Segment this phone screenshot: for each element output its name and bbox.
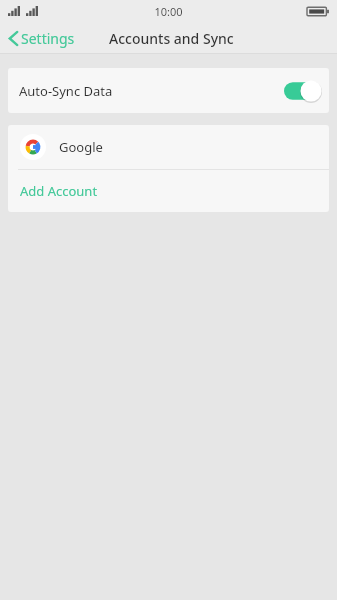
staticText: Google: [59, 138, 103, 156]
staticText: Auto-Sync Data: [19, 82, 113, 100]
button[interactable]: Add Account: [8, 170, 329, 212]
staticText: Settings: [21, 29, 75, 48]
staticText: Accounts and Sync: [109, 29, 234, 48]
button[interactable]: Settings: [0, 25, 83, 52]
staticText: Add Account: [20, 182, 98, 200]
staticText: 10:00: [154, 4, 183, 19]
button[interactable]: Google: [8, 125, 329, 169]
button[interactable]: Auto-Sync Data toggle, on: [284, 80, 322, 102]
button[interactable]: Auto-Sync Data: [8, 68, 329, 113]
